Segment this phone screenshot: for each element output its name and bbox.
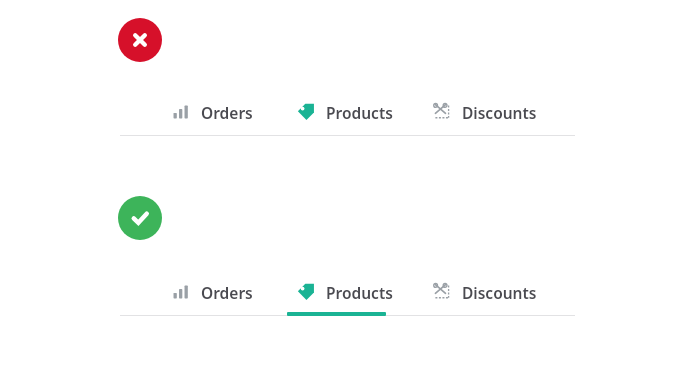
button[interactable]: Orders bbox=[168, 95, 255, 129]
staticText: Orders bbox=[201, 282, 253, 303]
staticText: Products bbox=[326, 102, 393, 123]
staticText: Discounts bbox=[462, 102, 537, 123]
button[interactable]: Products bbox=[293, 275, 395, 309]
staticText: Discounts bbox=[462, 282, 537, 303]
button[interactable]: Error bbox=[118, 18, 162, 62]
staticText: Products bbox=[326, 282, 393, 303]
button[interactable]: Products bbox=[293, 95, 395, 129]
staticText: Orders bbox=[201, 102, 253, 123]
button[interactable]: Discounts bbox=[429, 95, 539, 129]
button[interactable]: Discounts bbox=[429, 275, 539, 309]
button[interactable]: Orders bbox=[168, 275, 255, 309]
button[interactable]: Success bbox=[118, 196, 162, 240]
